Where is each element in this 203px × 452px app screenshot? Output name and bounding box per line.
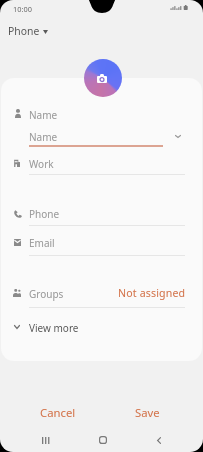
staticText: View more — [29, 321, 79, 335]
staticText: 10:00 — [13, 4, 32, 14]
button[interactable]: Back — [139, 428, 179, 452]
button[interactable]: Home — [83, 428, 123, 452]
button[interactable]: Phone — [6, 22, 50, 40]
staticText: Not assigned — [118, 286, 186, 300]
button[interactable]: Add photo — [84, 59, 122, 97]
button[interactable]: Cancel — [28, 403, 88, 421]
button[interactable]: Not assigned — [110, 285, 186, 300]
staticText: Save — [135, 405, 160, 420]
button[interactable]: Expand name — [170, 128, 186, 144]
button[interactable]: Save — [117, 403, 177, 421]
staticText: Phone — [8, 24, 40, 38]
staticText: Name — [29, 108, 58, 122]
staticText: Groups — [29, 287, 64, 301]
staticText: Name — [29, 130, 58, 144]
button[interactable]: Recents — [25, 428, 65, 452]
staticText: Email — [29, 236, 55, 250]
staticText: Work — [29, 157, 54, 171]
staticText: Cancel — [40, 405, 76, 420]
staticText: Phone — [29, 207, 60, 221]
